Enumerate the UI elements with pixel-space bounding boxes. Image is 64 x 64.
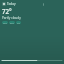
staticText: Today bbox=[7, 2, 16, 6]
staticText: PM bbox=[10, 21, 14, 24]
staticText: 72° bbox=[2, 7, 12, 15]
button[interactable]: Weather conditions bbox=[2, 2, 6, 6]
staticText: AM bbox=[3, 21, 7, 24]
staticText: Nt bbox=[17, 21, 20, 24]
button[interactable]: Nt bbox=[16, 21, 21, 24]
staticText: Partly cloudy bbox=[2, 16, 21, 20]
button[interactable]: PM bbox=[9, 21, 15, 24]
button[interactable]: Daily progress bbox=[2, 60, 62, 61]
button[interactable]: More options bbox=[42, 3, 45, 6]
button[interactable]: AM bbox=[2, 21, 8, 24]
